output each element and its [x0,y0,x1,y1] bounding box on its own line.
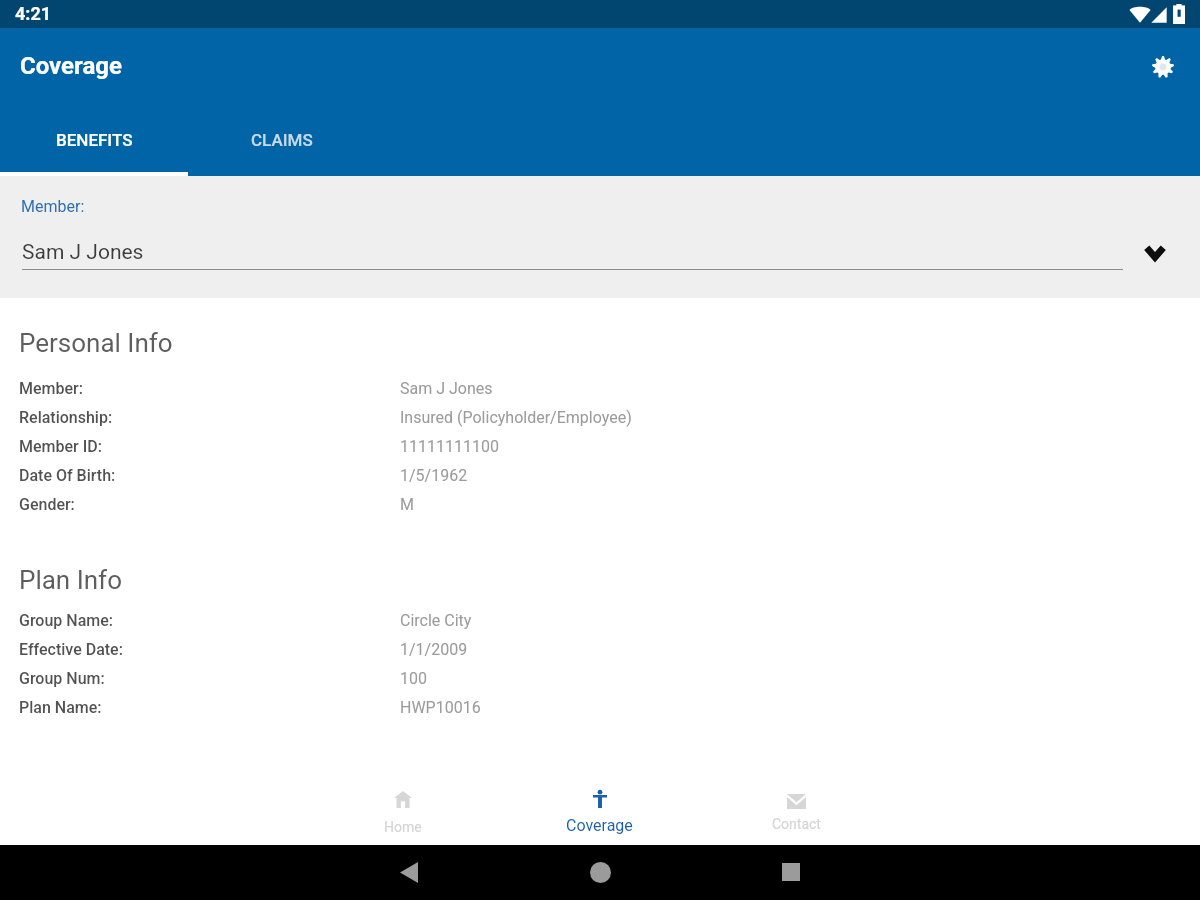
staticText: CLAIMS [251,130,313,150]
staticText: 1/5/1962 [400,466,468,485]
button[interactable]: Home [576,848,624,896]
staticText: Home [384,819,422,835]
staticText: Member: [19,379,400,398]
button[interactable]: Settings [1143,47,1183,87]
staticText: Plan Name: [19,698,400,717]
staticText: Coverage [20,52,122,80]
staticText: BENEFITS [56,130,133,150]
button[interactable]: Coverage [501,774,698,845]
button[interactable]: Recent apps [767,848,815,896]
staticText: Group Num: [19,669,400,688]
staticText: Personal Info [19,328,173,358]
button[interactable]: CLAIMS [188,110,376,176]
staticText: Member ID: [19,437,400,456]
staticText: Sam J Jones [22,240,144,265]
staticText: Gender: [19,495,400,514]
staticText: 100 [400,669,427,688]
staticText: Coverage [566,816,633,835]
staticText: Relationship: [19,408,400,427]
staticText: Circle City [400,611,472,630]
staticText: Member: [21,197,85,216]
staticText: 11111111100 [400,437,499,456]
staticText: Contact [772,816,821,832]
button[interactable]: Home [304,774,501,845]
staticText: 4:21 [15,3,52,24]
button[interactable]: BENEFITS [0,110,188,176]
staticText: Date Of Birth: [19,466,400,485]
button[interactable]: Back [385,848,433,896]
button[interactable]: Select member [1127,230,1183,274]
button[interactable]: Sam J Jones [22,232,1123,270]
staticText: Effective Date: [19,640,400,659]
staticText: Sam J Jones [400,379,493,398]
staticText: HWP10016 [400,698,481,717]
staticText: Group Name: [19,611,400,630]
staticText: Insured (Policyholder/Employee) [400,408,632,427]
staticText: 1/1/2009 [400,640,468,659]
staticText: M [400,495,414,514]
button[interactable]: Contact [698,774,895,845]
staticText: Plan Info [19,565,122,595]
